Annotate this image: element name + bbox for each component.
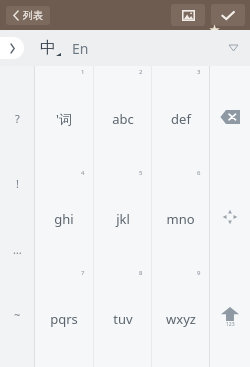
staticText: 中 [40,38,56,58]
staticText: ghi [54,210,74,228]
button[interactable]: Switch to numbers [210,267,250,367]
button[interactable]: ! [0,170,34,197]
staticText: abc [112,110,134,128]
staticText: pqrs [50,310,78,328]
staticText: 3 [197,68,201,76]
button[interactable]: En [72,39,89,58]
staticText: def [171,110,191,128]
button[interactable]: Insert image [171,4,205,26]
button[interactable]: Expand toolbar [0,37,24,59]
staticText: 2 [139,68,143,76]
button[interactable]: 1 [35,66,93,167]
staticText: 8 [139,269,143,277]
staticText: 列表 [23,9,43,22]
button[interactable]: … [0,236,34,263]
staticText: 4 [81,169,85,177]
button[interactable]: 中 [36,36,65,60]
button[interactable]: 4 [35,167,93,267]
staticText: ! [16,176,19,191]
staticText: 9 [197,269,201,277]
button[interactable]: ? [0,105,34,132]
button[interactable]: 8 [94,267,151,367]
staticText: wxyz [166,310,196,328]
staticText: … [13,242,22,257]
staticText: tuv [113,310,133,328]
staticText: ~ [14,307,21,322]
staticText: '词 [56,110,72,128]
staticText: 1 [81,68,85,76]
button[interactable]: 列表 [6,6,50,25]
staticText: 5 [139,169,143,177]
staticText: 6 [197,169,201,177]
staticText: ? [15,111,20,126]
button[interactable]: Move cursor [210,167,250,267]
staticText: jkl [116,210,130,228]
button[interactable]: 2 [94,66,151,167]
button[interactable]: Done [211,4,245,26]
staticText: 7 [81,269,85,277]
button[interactable]: 3 [152,66,209,167]
button[interactable]: ~ [0,301,34,328]
button[interactable]: 6 [152,167,209,267]
button[interactable]: Backspace [210,66,250,167]
button[interactable]: 5 [94,167,151,267]
button[interactable]: 7 [35,267,93,367]
button[interactable]: Hide keyboard [224,39,242,57]
staticText: 123 [226,321,235,328]
staticText: mno [166,210,195,228]
button[interactable]: 9 [152,267,209,367]
